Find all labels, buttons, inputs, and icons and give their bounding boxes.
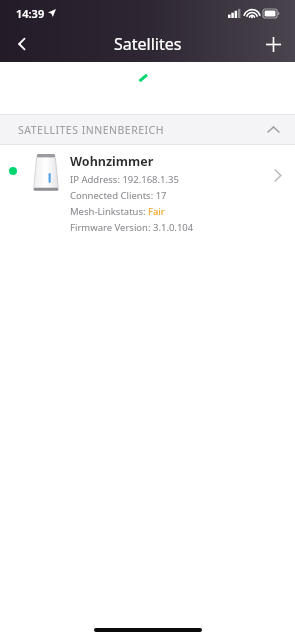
staticText: Mesh-Linkstatus: Fair — [70, 205, 165, 218]
staticText: Connected Clients: 17 — [70, 189, 167, 202]
staticText: SATELLITES INNENBEREICH — [18, 123, 164, 137]
staticText: Wohnzimmer — [70, 153, 154, 170]
button[interactable]: Wohnzimmer — [0, 145, 295, 240]
staticText: 14:39 — [16, 6, 45, 21]
button[interactable]: Add satellite — [251, 26, 295, 62]
staticText: Firmware Version: 3.1.0.104 — [70, 221, 194, 234]
button[interactable]: SATELLITES INNENBEREICH — [0, 114, 295, 145]
button[interactable]: Back — [0, 26, 44, 62]
staticText: IP Address: 192.168.1.35 — [70, 173, 179, 186]
staticText: Satellites — [114, 33, 182, 55]
